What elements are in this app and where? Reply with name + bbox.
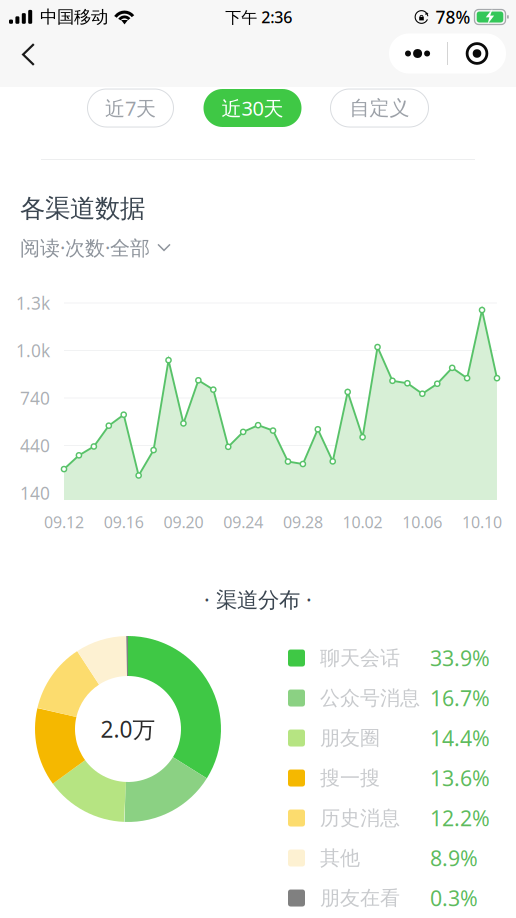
staticText: 朋友在看 [320,886,400,910]
staticText: 09.28 [283,511,323,533]
staticText: 78% [435,5,470,28]
staticText: 09.20 [163,511,203,533]
staticText: 2.0万 [100,714,155,744]
button[interactable]: 近7天 [87,89,173,127]
staticText: 10.10 [462,511,502,533]
staticText: 09.12 [44,511,84,533]
staticText: 自定义 [349,96,409,120]
staticText: 09.16 [104,511,144,533]
staticText: 近7天 [105,95,156,121]
button[interactable]: 更多 [389,33,447,73]
staticText: 10.06 [402,511,442,533]
staticText: 搜一搜 [320,766,380,790]
staticText: 下午 2:36 [225,6,292,28]
staticText: · 渠道分布 · [204,585,312,613]
staticText: 14.4% [430,724,490,752]
staticText: 12.2% [430,804,490,832]
staticText: 聊天会话 [320,646,400,670]
staticText: 公众号消息 [320,686,420,710]
staticText: 13.6% [430,764,490,792]
staticText: 33.9% [430,644,490,672]
button[interactable]: 近30天 [203,89,301,127]
staticText: 440 [20,434,50,457]
staticText: 1.0k [16,339,50,362]
staticText: 10.02 [343,511,383,533]
staticText: 朋友圈 [320,726,380,750]
staticText: 8.9% [430,844,478,872]
staticText: 1.3k [16,291,50,314]
staticText: 历史消息 [320,806,400,830]
staticText: 16.7% [430,684,490,712]
staticText: 阅读·次数·全部 [20,234,150,261]
staticText: 各渠道数据 [20,193,145,224]
staticText: 其他 [320,846,360,870]
staticText: 近30天 [221,95,283,121]
button[interactable]: 返回 [0,34,57,87]
staticText: 740 [20,386,50,409]
button[interactable]: 自定义 [330,89,428,127]
button[interactable]: 关闭 [448,33,506,73]
staticText: 中国移动 [40,6,108,28]
staticText: 0.3% [430,884,478,912]
staticText: 140 [20,481,50,504]
staticText: 09.24 [223,511,263,533]
